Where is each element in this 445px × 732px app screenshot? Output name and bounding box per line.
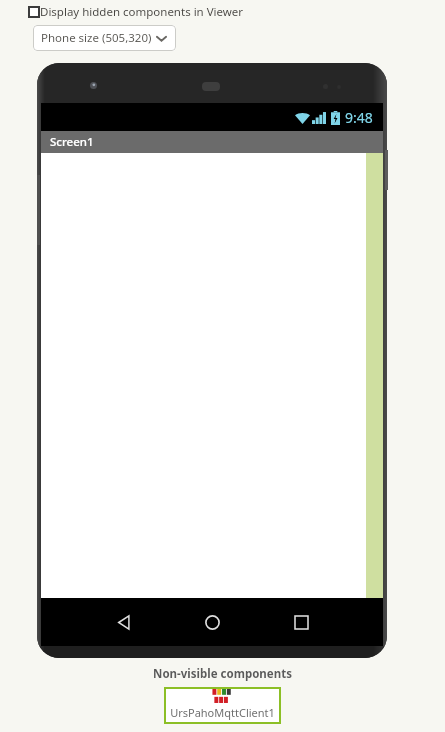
button[interactable]: UrsPahoMqttClient1	[164, 687, 281, 724]
staticText: Phone size (505,320)	[41, 30, 152, 46]
staticText: 9:48	[345, 108, 373, 127]
button[interactable]: Display hidden components in Viewer	[28, 4, 244, 20]
staticText: Display hidden components in Viewer	[40, 4, 244, 20]
button[interactable]: Phone size selector	[33, 25, 176, 51]
button[interactable]: Back	[99, 598, 147, 646]
button[interactable]: Home	[188, 598, 236, 646]
button[interactable]: Recent apps	[277, 598, 325, 646]
staticText: UrsPahoMqttClient1	[170, 705, 275, 720]
staticText: Screen1	[50, 134, 94, 150]
staticText: Non-visible components	[153, 666, 292, 682]
button[interactable]: Screen1	[41, 131, 383, 153]
